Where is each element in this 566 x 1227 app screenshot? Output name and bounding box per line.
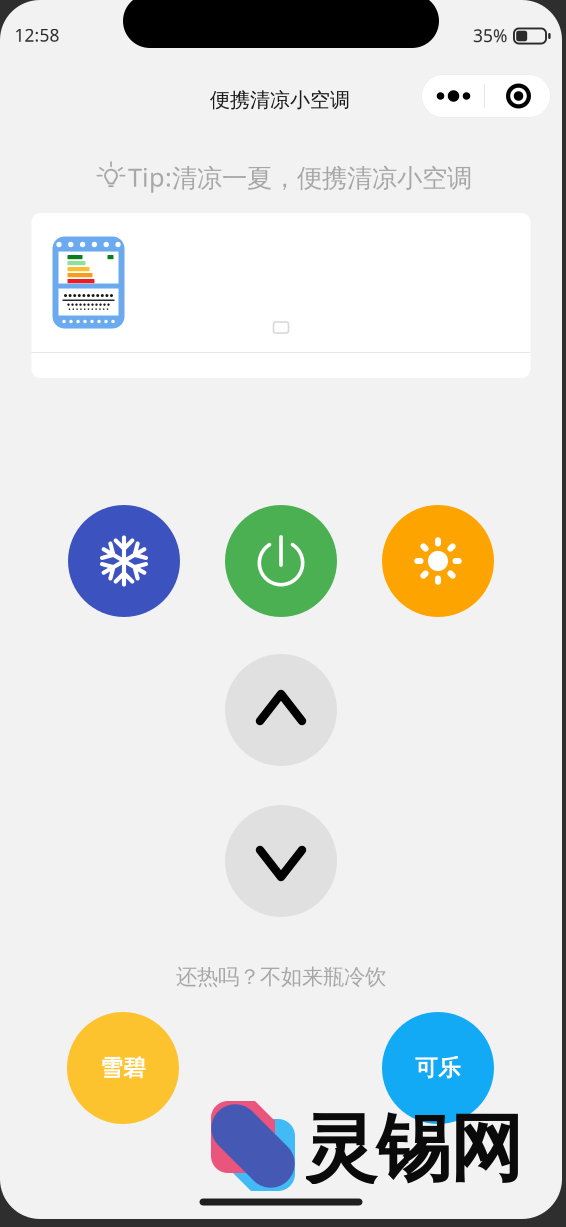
button[interactable]: 可乐 [382, 1012, 494, 1124]
staticText: 雪碧 [100, 1054, 146, 1082]
staticText: 还热吗？不如来瓶冷饮 [176, 964, 386, 990]
button[interactable] [68, 505, 180, 617]
button[interactable]: Increase [225, 654, 337, 766]
button[interactable]: 雪碧 [67, 1012, 179, 1124]
button[interactable]: More [421, 74, 486, 118]
staticText: 灵锡网 [303, 1104, 522, 1194]
staticText: 12:58 [14, 23, 59, 46]
button[interactable] [225, 505, 337, 617]
button[interactable] [382, 505, 494, 617]
button[interactable]: Advertisement [31, 213, 530, 378]
staticText: 便携清凉小空调 [210, 88, 350, 112]
button[interactable]: Decrease [225, 805, 337, 917]
staticText: 可乐 [415, 1054, 461, 1082]
staticText: Tip:清凉一夏，便携清凉小空调 [128, 160, 472, 194]
staticText: 35% [473, 24, 507, 47]
button[interactable]: Close mini program [486, 74, 551, 118]
